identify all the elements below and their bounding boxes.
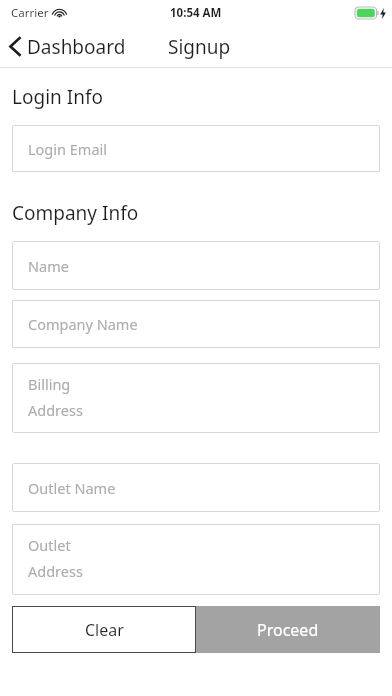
staticText: Signup [168, 34, 231, 60]
button[interactable]: Outlet [12, 524, 380, 595]
staticText: Billing [28, 374, 71, 394]
staticText: Name [28, 256, 69, 276]
button[interactable]: Outlet Name [12, 463, 380, 512]
staticText: Outlet [28, 535, 71, 555]
button[interactable]: Login Email [12, 125, 380, 172]
staticText: Company Name [28, 314, 138, 334]
staticText: Outlet Name [28, 478, 116, 498]
staticText: Clear [85, 619, 124, 641]
staticText: Address [28, 400, 83, 420]
staticText: Login Info [12, 84, 103, 110]
staticText: 10:54 AM [170, 5, 222, 21]
button[interactable]: Billing [12, 363, 380, 433]
button[interactable]: Name [12, 241, 380, 290]
staticText: Dashboard [27, 34, 126, 60]
staticText: Company Info [12, 200, 139, 226]
button[interactable]: Proceed [196, 606, 380, 653]
staticText: Login Email [28, 139, 107, 159]
button[interactable]: Dashboard [0, 25, 134, 68]
staticText: Proceed [257, 619, 319, 641]
button[interactable]: Clear [12, 606, 196, 653]
staticText: Carrier [11, 5, 49, 21]
button[interactable]: Company Name [12, 300, 380, 348]
staticText: Address [28, 561, 83, 581]
